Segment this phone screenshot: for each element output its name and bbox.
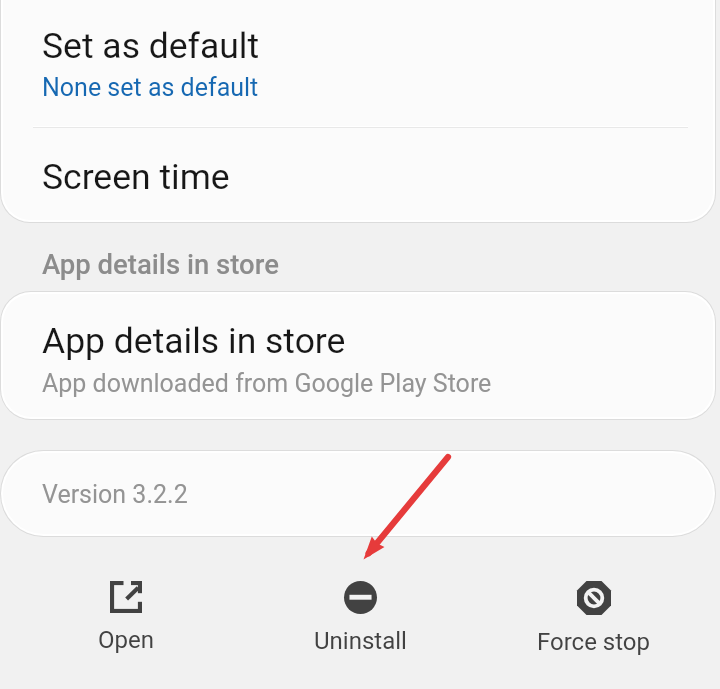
staticText: Force stop <box>537 628 651 656</box>
staticText: Set as default <box>42 25 260 67</box>
button[interactable]: Force stop <box>484 560 704 670</box>
button[interactable]: Screen time <box>3 127 713 220</box>
button[interactable]: Uninstall <box>250 560 470 670</box>
button[interactable]: App details in store <box>3 294 713 417</box>
staticText: App details in store <box>42 320 346 362</box>
staticText: None set as default <box>42 73 259 102</box>
staticText: App downloaded from Google Play Store <box>42 369 492 398</box>
staticText: Uninstall <box>314 627 407 655</box>
button[interactable]: Set as default <box>3 0 713 126</box>
staticText: Version 3.2.2 <box>42 480 188 509</box>
other: Force stop <box>577 581 611 615</box>
button[interactable]: Open <box>16 560 236 670</box>
staticText: Screen time <box>42 156 230 198</box>
staticText: Open <box>98 626 154 654</box>
other: Uninstall <box>344 581 377 614</box>
staticText: App details in store <box>42 248 279 280</box>
other: Open <box>110 581 142 613</box>
